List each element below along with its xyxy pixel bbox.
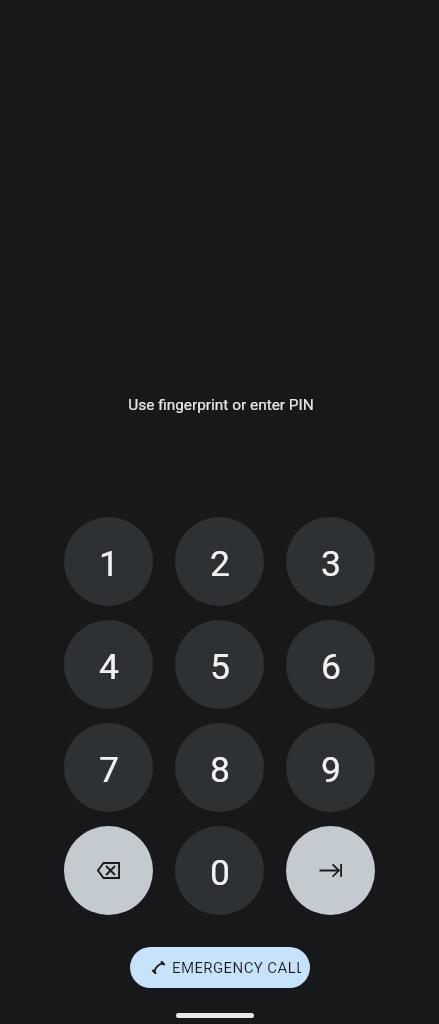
button[interactable]: Enter: [286, 826, 375, 915]
button[interactable]: 8: [175, 723, 264, 812]
button[interactable]: 5: [175, 620, 264, 709]
button[interactable]: 6: [286, 620, 375, 709]
button[interactable]: 9: [286, 723, 375, 812]
staticText: 6: [321, 646, 341, 688]
staticText: 3: [321, 543, 341, 585]
button[interactable]: 7: [64, 723, 153, 812]
staticText: 0: [210, 852, 230, 894]
button[interactable]: 2: [175, 517, 264, 606]
button[interactable]: 1: [64, 517, 153, 606]
staticText: 5: [210, 646, 230, 688]
staticText: EMERGENCY CALL: [172, 959, 301, 977]
button[interactable]: 4: [64, 620, 153, 709]
staticText: 4: [99, 646, 119, 688]
staticText: 1: [99, 543, 119, 585]
staticText: Use fingerprint or enter PIN: [128, 396, 314, 414]
button[interactable]: Backspace: [64, 826, 153, 915]
button[interactable]: EMERGENCY CALL: [130, 947, 310, 988]
button[interactable]: 3: [286, 517, 375, 606]
staticText: 7: [99, 749, 119, 791]
button[interactable]: 0: [175, 826, 264, 915]
staticText: 2: [210, 543, 230, 585]
staticText: 8: [210, 749, 230, 791]
staticText: 9: [321, 749, 341, 791]
